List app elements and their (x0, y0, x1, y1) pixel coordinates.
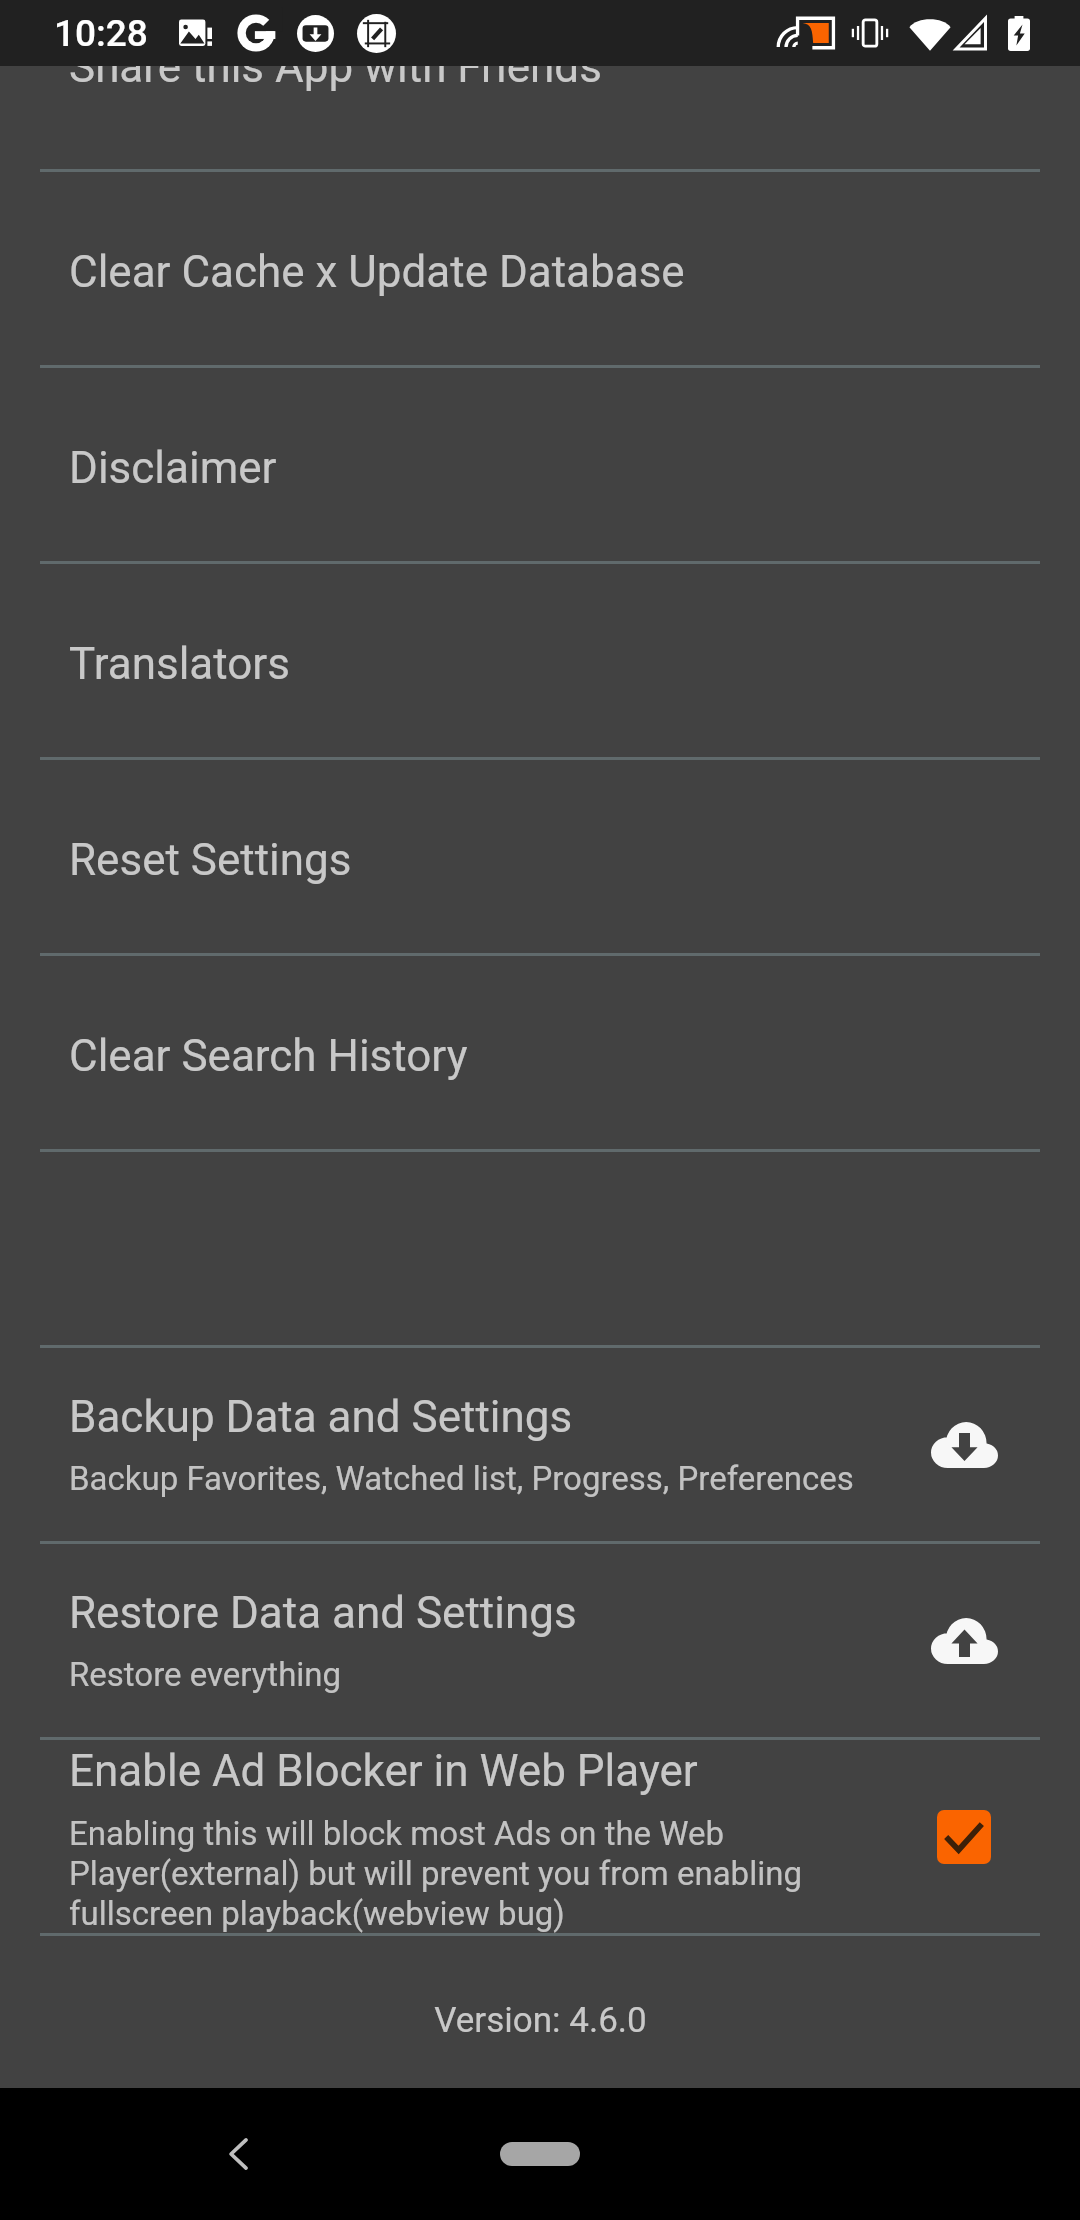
button[interactable]: Enable Ad Blocker in Web Player (0, 1740, 1080, 1933)
staticText: Restore everything (69, 1655, 342, 1694)
staticText: Backup Data and Settings (69, 1391, 573, 1443)
button[interactable]: Share this App with Friends (0, 66, 1080, 169)
staticText: Disclaimer (69, 442, 277, 494)
button[interactable]: Reset Settings (0, 760, 1080, 953)
button[interactable]: Disclaimer (0, 368, 1080, 561)
button[interactable]: Home (500, 2142, 580, 2166)
button[interactable]: Clear Cache x Update Database (0, 172, 1080, 365)
staticText: Enabling this will block most Ads on the… (69, 1814, 869, 1933)
staticText: Share this App with Friends (69, 66, 602, 93)
button[interactable]: Back (194, 2109, 284, 2199)
button[interactable]: Translators (0, 564, 1080, 757)
staticText: Enable Ad Blocker in Web Player (69, 1745, 698, 1797)
button[interactable]: Restore Data and Settings (0, 1544, 1080, 1737)
staticText: Translators (69, 638, 290, 690)
staticText: Clear Cache x Update Database (69, 246, 685, 298)
staticText: 10:28 (54, 12, 148, 55)
staticText: Backup Favorites, Watched list, Progress… (69, 1459, 854, 1498)
staticText: Clear Search History (69, 1030, 468, 1082)
staticText: Reset Settings (69, 834, 352, 886)
button[interactable]: Enable Ad Blocker checkbox (937, 1810, 991, 1864)
button[interactable]: Clear Search History (0, 956, 1080, 1149)
button[interactable]: Backup Data and Settings (0, 1348, 1080, 1541)
staticText: Version: 4.6.0 (434, 2000, 647, 2041)
staticText: Restore Data and Settings (69, 1587, 577, 1639)
